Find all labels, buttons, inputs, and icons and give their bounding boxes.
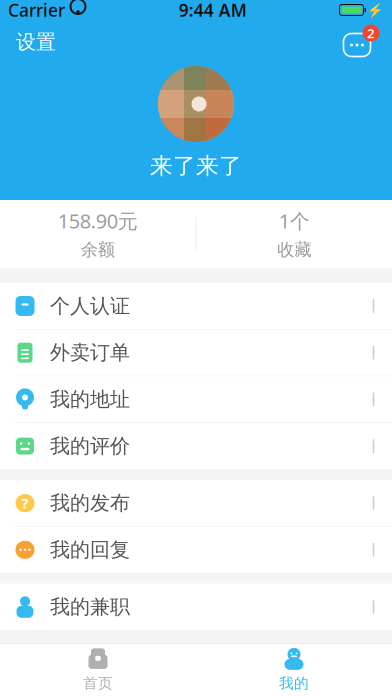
staticText: ⚡ xyxy=(367,2,384,18)
staticText: 我的地址 xyxy=(50,387,130,412)
staticText: 9:44 AM xyxy=(179,0,247,21)
staticText: Carrier xyxy=(8,0,65,21)
staticText: 首页 xyxy=(83,674,113,692)
button[interactable]: 我的评价 xyxy=(0,423,392,469)
staticText: 我的评价 xyxy=(50,434,130,458)
button[interactable]: ? xyxy=(0,480,392,527)
button[interactable]: 首页 xyxy=(0,644,196,696)
staticText: 外卖订单 xyxy=(50,340,130,365)
button[interactable]: Messages xyxy=(332,20,386,64)
button[interactable]: 设置 xyxy=(0,22,72,62)
button[interactable]: 我的兼职 xyxy=(0,584,392,630)
button[interactable]: 158.90元 xyxy=(0,200,195,268)
staticText: 2 xyxy=(367,24,375,42)
staticText: 来了来了 xyxy=(150,152,242,180)
button[interactable]: 我的 xyxy=(196,644,392,696)
staticText: 我的发布 xyxy=(50,491,130,515)
staticText: 我的 xyxy=(279,674,309,692)
button[interactable]: 1个 xyxy=(196,200,392,268)
button[interactable]: 外卖订单 xyxy=(0,330,392,376)
button[interactable]: 个人认证 xyxy=(0,283,392,330)
staticText: 余额 xyxy=(81,239,115,260)
button[interactable]: 我的回复 xyxy=(0,527,392,573)
staticText: 收藏 xyxy=(277,239,311,260)
button[interactable]: 我的地址 xyxy=(0,376,392,423)
staticText: 我的兼职 xyxy=(50,594,130,619)
staticText: 1个 xyxy=(279,208,310,234)
staticText: 设置 xyxy=(16,30,56,54)
staticText: 个人认证 xyxy=(50,294,130,318)
staticText: 158.90元 xyxy=(58,208,138,234)
staticText: 我的回复 xyxy=(50,537,130,562)
staticText: ? xyxy=(21,493,28,513)
